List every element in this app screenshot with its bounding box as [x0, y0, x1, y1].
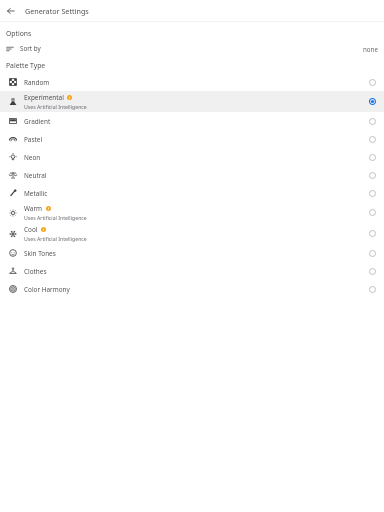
button[interactable]: Skin Tones	[0, 244, 384, 262]
button[interactable]: Metallic	[0, 184, 384, 202]
staticText: Uses Artificial Intelligence	[24, 235, 87, 242]
staticText: Gradient	[24, 117, 51, 126]
staticText: Color Harmony	[24, 285, 70, 294]
button[interactable]: Pastel	[0, 130, 384, 148]
staticText: Neutral	[24, 171, 47, 180]
button[interactable]: Warm	[0, 202, 384, 223]
button[interactable]: Back	[0, 0, 22, 22]
staticText: Sort by	[20, 44, 41, 53]
button[interactable]: Random	[0, 73, 384, 91]
staticText: Pastel	[24, 135, 43, 144]
staticText: Cool	[24, 225, 38, 234]
button[interactable]: Neon	[0, 148, 384, 166]
button[interactable]: Experimental	[0, 91, 384, 112]
staticText: Metallic	[24, 189, 48, 198]
staticText: none	[363, 45, 378, 53]
button[interactable]: Gradient	[0, 112, 384, 130]
staticText: Clothes	[24, 267, 47, 276]
button[interactable]: Neutral	[0, 166, 384, 184]
staticText: Uses Artificial Intelligence	[24, 103, 87, 110]
button[interactable]: Clothes	[0, 262, 384, 280]
staticText: Skin Tones	[24, 249, 56, 258]
staticText: Options	[6, 29, 32, 38]
staticText: Uses Artificial Intelligence	[24, 214, 87, 221]
staticText: Experimental	[24, 93, 64, 102]
staticText: Palette Type	[6, 61, 46, 70]
staticText: Neon	[24, 153, 41, 162]
button[interactable]: Color Harmony	[0, 280, 384, 298]
staticText: Random	[24, 78, 50, 87]
staticText: Generator Settings	[25, 6, 89, 16]
staticText: Warm	[24, 204, 43, 213]
button[interactable]: Cool	[0, 223, 384, 244]
button[interactable]: Sort by	[0, 41, 384, 56]
